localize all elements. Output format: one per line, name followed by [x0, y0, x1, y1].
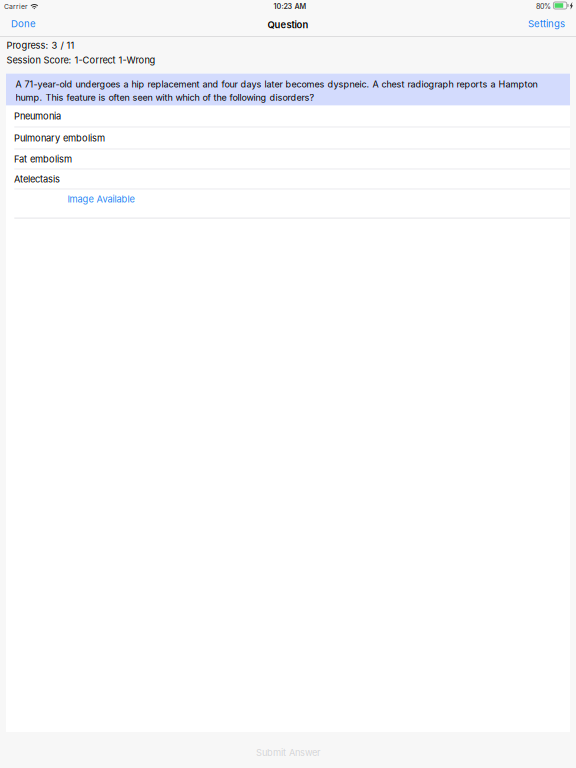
staticText: Question [267, 19, 308, 30]
staticText: Image Available [67, 194, 134, 205]
staticText: 10:23 AM [273, 2, 306, 11]
button[interactable]: Done [5, 15, 42, 33]
staticText: Carrier [4, 2, 28, 11]
button[interactable]: Fat embolism [6, 150, 570, 169]
staticText: Done [11, 18, 36, 30]
button[interactable]: Pneumonia [6, 106, 570, 127]
staticText: Submit Answer [256, 747, 320, 758]
staticText: Atelectasis [14, 173, 60, 185]
staticText: Pneumonia [14, 110, 61, 122]
staticText: 80% [536, 2, 551, 11]
button[interactable]: Settings [522, 15, 571, 33]
button[interactable]: Image Available [6, 190, 570, 218]
staticText: A 71-year-old undergoes a hip replacemen… [15, 79, 537, 103]
staticText: Settings [528, 18, 565, 30]
staticText: Progress: 3 / 11 [6, 40, 74, 51]
button[interactable]: Pulmonary embolism [6, 128, 570, 149]
staticText: Session Score: 1-Correct 1-Wrong [6, 54, 155, 66]
button[interactable]: Atelectasis [6, 170, 570, 189]
staticText: Pulmonary embolism [14, 132, 105, 144]
staticText: Fat embolism [14, 153, 72, 165]
